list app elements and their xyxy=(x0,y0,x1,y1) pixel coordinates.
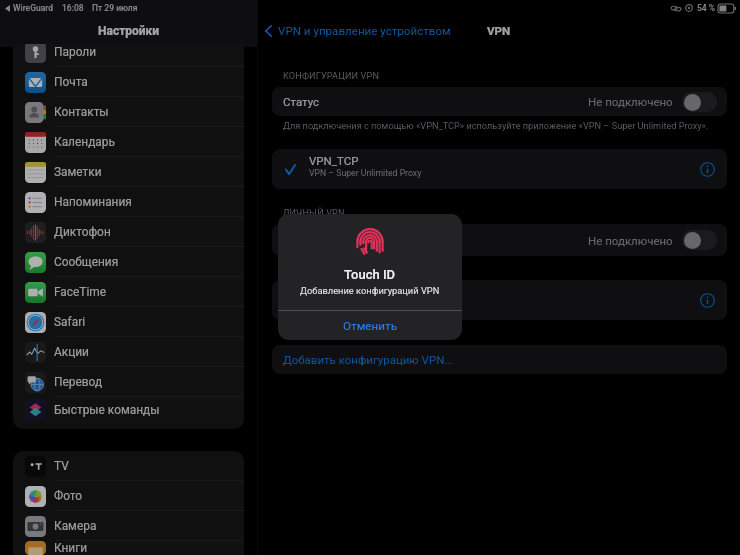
button[interactable]: Toggle VPN status xyxy=(682,92,717,112)
staticText: Статус xyxy=(283,95,320,108)
staticText: Добавление конфигураций VPN xyxy=(300,285,440,296)
staticText: Сообщения xyxy=(54,255,119,269)
staticText: Пт 29 июля xyxy=(92,3,138,13)
staticText: Не подключено xyxy=(588,95,673,108)
button[interactable]: VPN_TCP xyxy=(272,149,727,189)
staticText: Фото xyxy=(54,489,83,503)
staticText: Safari xyxy=(54,315,86,329)
staticText: Добавить конфигурацию VPN... xyxy=(283,353,454,366)
staticText: FaceTime xyxy=(54,285,107,299)
button[interactable]: Статус xyxy=(272,224,727,256)
staticText: Календарь xyxy=(54,135,115,149)
staticText: VPN – Super Unlimited Proxy xyxy=(309,168,422,178)
button[interactable]: Календарь xyxy=(13,127,244,157)
button[interactable]: Safari xyxy=(13,307,244,337)
button[interactable]: Пароли xyxy=(13,44,244,67)
staticText: Акции xyxy=(54,345,89,359)
button[interactable]: More info xyxy=(700,293,715,308)
staticText: Камера xyxy=(54,519,97,533)
staticText: Быстрые команды xyxy=(54,403,160,417)
staticText: Не подключено xyxy=(588,234,673,247)
button[interactable]: TV xyxy=(13,451,244,481)
button[interactable]: Перевод xyxy=(13,367,244,397)
staticText: Для подключения с помощью «VPN_TCP» испо… xyxy=(283,120,709,131)
button[interactable]: Контакты xyxy=(13,97,244,127)
button[interactable]: Книги xyxy=(13,541,244,555)
button[interactable]: Напоминания xyxy=(13,187,244,217)
button[interactable]: Добавить конфигурацию VPN... xyxy=(272,345,727,374)
staticText: VPN_TCP xyxy=(309,154,359,167)
staticText: Отменить xyxy=(343,319,397,333)
staticText: Настройки xyxy=(98,24,160,38)
staticText: Книги xyxy=(54,541,88,555)
button[interactable]: Акции xyxy=(13,337,244,367)
staticText: VPN xyxy=(487,24,511,38)
button[interactable]: Камера xyxy=(13,511,244,541)
button[interactable]: More info xyxy=(272,280,727,320)
button[interactable]: Заметки xyxy=(13,157,244,187)
staticText: Заметки xyxy=(54,165,102,179)
button[interactable]: Диктофон xyxy=(13,217,244,247)
staticText: Touch ID xyxy=(344,267,396,282)
button[interactable]: Быстрые команды xyxy=(13,397,244,422)
button[interactable]: VPN и управление устройством xyxy=(265,20,451,42)
staticText: VPN и управление устройством xyxy=(278,24,451,38)
staticText: Диктофон xyxy=(54,225,111,239)
staticText: ЛИЧНЫЙ VPN xyxy=(283,208,345,219)
staticText: 54 % xyxy=(697,3,716,13)
staticText: 16:08 xyxy=(62,3,84,13)
button[interactable]: Сообщения xyxy=(13,247,244,277)
staticText: WireGuard xyxy=(13,3,53,13)
button[interactable]: FaceTime xyxy=(13,277,244,307)
button[interactable]: More info xyxy=(700,162,715,177)
button[interactable]: Статус xyxy=(272,87,727,116)
button[interactable]: Отменить xyxy=(278,311,462,340)
button[interactable]: Фото xyxy=(13,481,244,511)
staticText: КОНФИГУРАЦИИ VPN xyxy=(283,71,380,82)
staticText: Контакты xyxy=(54,105,109,119)
button[interactable]: Toggle VPN status xyxy=(682,230,717,250)
staticText: Напоминания xyxy=(54,195,132,209)
staticText: Перевод xyxy=(54,375,103,389)
staticText: Пароли xyxy=(54,45,97,59)
button[interactable]: Почта xyxy=(13,67,244,97)
staticText: Почта xyxy=(54,75,88,89)
staticText: TV xyxy=(54,459,69,473)
